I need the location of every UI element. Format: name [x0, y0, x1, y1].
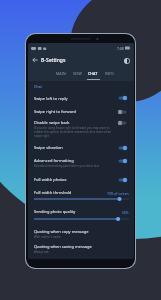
staticText: Disable swipe back: [34, 120, 70, 125]
staticText: Always ask: [34, 250, 118, 254]
button[interactable]: MAIN: [53, 67, 69, 81]
staticText: Sending photo quality: [34, 209, 76, 214]
staticText: Chat: [34, 84, 42, 89]
staticText: MAIN: [56, 71, 66, 76]
button[interactable]: Quoting when copy message: [28, 222, 134, 244]
button[interactable]: Disable swipe back: [28, 120, 134, 145]
button[interactable]: Swipe left to reply: [28, 92, 134, 109]
button[interactable]: CHAT: [85, 67, 101, 81]
button[interactable]: Switch on: [117, 94, 128, 102]
staticText: Swipe right to forward: [34, 109, 76, 114]
staticText: Quoting when saving message: [34, 244, 92, 249]
staticText: Quoting when copy message: [34, 229, 89, 234]
staticText: With author's name: [34, 235, 118, 239]
button[interactable]: Switch off: [117, 108, 128, 116]
staticText: 60%: [122, 210, 129, 214]
button[interactable]: Switch on: [117, 157, 128, 165]
staticText: Swipe vibration: [34, 145, 63, 150]
staticText: Advanced formatting: [34, 158, 74, 163]
staticText: 70% of screen: [107, 191, 129, 195]
button[interactable]: Swipe right to forward: [28, 109, 134, 120]
button[interactable]: Full width threshold: [28, 190, 134, 196]
button[interactable]: Quoting when saving message: [28, 244, 134, 259]
staticText: INFO: [105, 71, 114, 76]
button[interactable]: Slider: [28, 216, 134, 222]
button[interactable]: Night mode: [121, 55, 132, 66]
button[interactable]: Full width photos: [28, 177, 134, 190]
button[interactable]: Swipe vibration: [28, 145, 134, 158]
button[interactable]: Slider: [28, 196, 134, 202]
staticText: Extended formatting panel when you selec…: [34, 164, 118, 168]
button[interactable]: Switch on: [117, 144, 128, 152]
staticText: If you are using Swipe right to forward …: [34, 126, 112, 138]
staticText: Full width threshold: [34, 190, 72, 195]
button[interactable]: VIEW: [69, 67, 85, 81]
staticText: Full width photos: [34, 177, 67, 182]
staticText: B-Settings: [41, 57, 66, 64]
staticText: 7:48: [117, 46, 124, 51]
button[interactable]: Advanced formatting: [28, 158, 134, 177]
button[interactable]: Back: [30, 55, 40, 65]
button[interactable]: Switch off: [117, 119, 128, 127]
staticText: VIEW: [73, 71, 82, 76]
button[interactable]: INFO: [101, 67, 117, 81]
button[interactable]: Sending photo quality: [28, 202, 134, 216]
button[interactable]: Switch on: [117, 176, 128, 184]
staticText: CHAT: [88, 71, 98, 76]
staticText: Swipe left to reply: [34, 96, 68, 101]
